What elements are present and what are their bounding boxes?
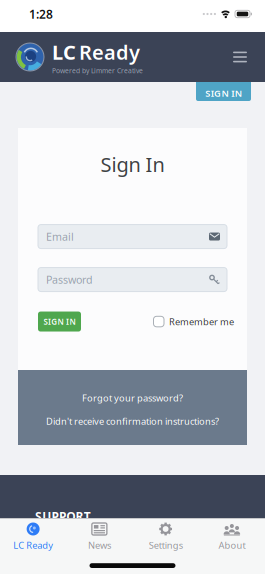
staticText: Settings <box>149 539 183 551</box>
staticText: News <box>88 539 111 551</box>
button[interactable]: About <box>199 522 265 551</box>
button[interactable]: SIGN IN <box>196 82 251 101</box>
button[interactable]: SIGN IN <box>38 312 81 332</box>
staticText: Remember me <box>169 315 234 328</box>
staticText: Forgot your password? <box>82 392 183 404</box>
staticText: LC <box>52 39 76 65</box>
staticText: LC Ready <box>13 539 53 551</box>
button[interactable]: Password <box>38 268 227 292</box>
button[interactable]: LC Ready <box>0 522 66 551</box>
staticText: Powered by Limmer Creative <box>52 66 143 75</box>
staticText: Password <box>46 272 93 287</box>
button[interactable]: Didn't receive confirmation instructions… <box>46 415 219 427</box>
button[interactable]: Settings <box>132 522 199 551</box>
button[interactable]: News <box>66 522 132 551</box>
staticText: Sign In <box>100 151 164 178</box>
staticText: Ready <box>79 39 140 65</box>
button[interactable]: Forgot your password? <box>82 392 183 404</box>
staticText: SIGN IN <box>205 87 242 99</box>
staticText: SIGN IN <box>44 316 75 327</box>
staticText: About <box>218 539 245 551</box>
button[interactable]: Menu <box>233 52 265 62</box>
staticText: Didn't receive confirmation instructions… <box>46 415 219 427</box>
staticText: Email <box>46 229 74 244</box>
button[interactable]: Email <box>38 225 227 249</box>
button[interactable]: Remember me <box>153 315 234 328</box>
staticText: 1:28 <box>29 6 53 22</box>
staticText: SUPPORT <box>35 508 91 524</box>
